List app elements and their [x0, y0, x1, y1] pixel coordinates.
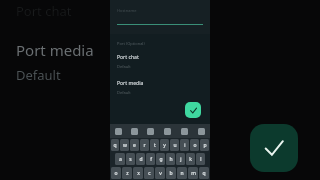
staticText: x: [137, 170, 140, 177]
staticText: Port media: [117, 80, 144, 87]
button[interactable]: Confirm: [250, 124, 298, 172]
staticText: v: [159, 170, 162, 177]
button[interactable]: j: [176, 153, 185, 165]
button[interactable]: o: [111, 167, 121, 179]
staticText: s: [129, 156, 132, 163]
button[interactable]: r: [140, 139, 149, 151]
button[interactable]: Port chat: [110, 53, 210, 70]
button[interactable]: c: [144, 167, 154, 179]
staticText: n: [180, 170, 184, 177]
staticText: c: [148, 170, 151, 177]
button[interactable]: q: [199, 167, 209, 179]
staticText: h: [169, 156, 173, 163]
staticText: o: [193, 142, 197, 149]
staticText: Port media: [16, 40, 94, 60]
staticText: d: [139, 156, 143, 163]
button[interactable]: b: [166, 167, 176, 179]
staticText: o: [114, 170, 118, 177]
button[interactable]: o: [190, 139, 199, 151]
staticText: z: [126, 170, 129, 177]
staticText: j: [180, 156, 182, 163]
button[interactable]: settings: [159, 124, 176, 138]
button[interactable]: grid: [110, 124, 126, 138]
button[interactable]: w: [120, 139, 129, 151]
staticText: e: [133, 142, 136, 149]
button[interactable]: u: [170, 139, 179, 151]
button[interactable]: e: [130, 139, 139, 151]
button[interactable]: z: [122, 167, 132, 179]
button[interactable]: Confirm: [185, 102, 201, 118]
button[interactable]: p: [200, 139, 209, 151]
button[interactable]: m: [188, 167, 198, 179]
staticText: y: [163, 142, 166, 149]
button[interactable]: t: [150, 139, 159, 151]
staticText: u: [173, 142, 177, 149]
button[interactable]: sticker: [126, 124, 142, 138]
button[interactable]: g: [156, 153, 165, 165]
staticText: q: [202, 170, 206, 177]
button[interactable]: i: [180, 139, 189, 151]
staticText: Port chat: [117, 54, 139, 61]
button[interactable]: k: [186, 153, 195, 165]
staticText: f: [150, 156, 152, 163]
button[interactable]: h: [166, 153, 175, 165]
staticText: t: [154, 142, 156, 149]
button[interactable]: Port media: [110, 79, 210, 96]
staticText: q: [113, 142, 117, 149]
button[interactable]: f: [146, 153, 155, 165]
button[interactable]: mic: [193, 124, 210, 138]
button[interactable]: n: [177, 167, 187, 179]
staticText: m: [191, 170, 196, 177]
staticText: Default: [16, 66, 61, 84]
staticText: i: [184, 142, 186, 149]
staticText: w: [123, 142, 127, 149]
staticText: g: [159, 156, 163, 163]
staticText: b: [169, 170, 173, 177]
button[interactable]: v: [155, 167, 165, 179]
button[interactable]: a: [115, 153, 125, 165]
staticText: Hostname: [117, 8, 137, 13]
staticText: Default: [117, 64, 131, 69]
button[interactable]: s: [126, 153, 135, 165]
staticText: Port chat: [16, 2, 72, 20]
staticText: Port (Optional): [117, 41, 145, 46]
button[interactable]: d: [136, 153, 145, 165]
button[interactable]: l: [196, 153, 205, 165]
staticText: Default: [117, 90, 131, 95]
button[interactable]: q: [111, 139, 119, 151]
button[interactable]: gif: [142, 124, 159, 138]
staticText: r: [143, 142, 146, 149]
button[interactable]: x: [133, 167, 143, 179]
staticText: k: [189, 156, 192, 163]
staticText: l: [200, 156, 202, 163]
staticText: a: [119, 156, 122, 163]
staticText: p: [203, 142, 207, 149]
button[interactable]: y: [160, 139, 169, 151]
button[interactable]: clip: [176, 124, 193, 138]
